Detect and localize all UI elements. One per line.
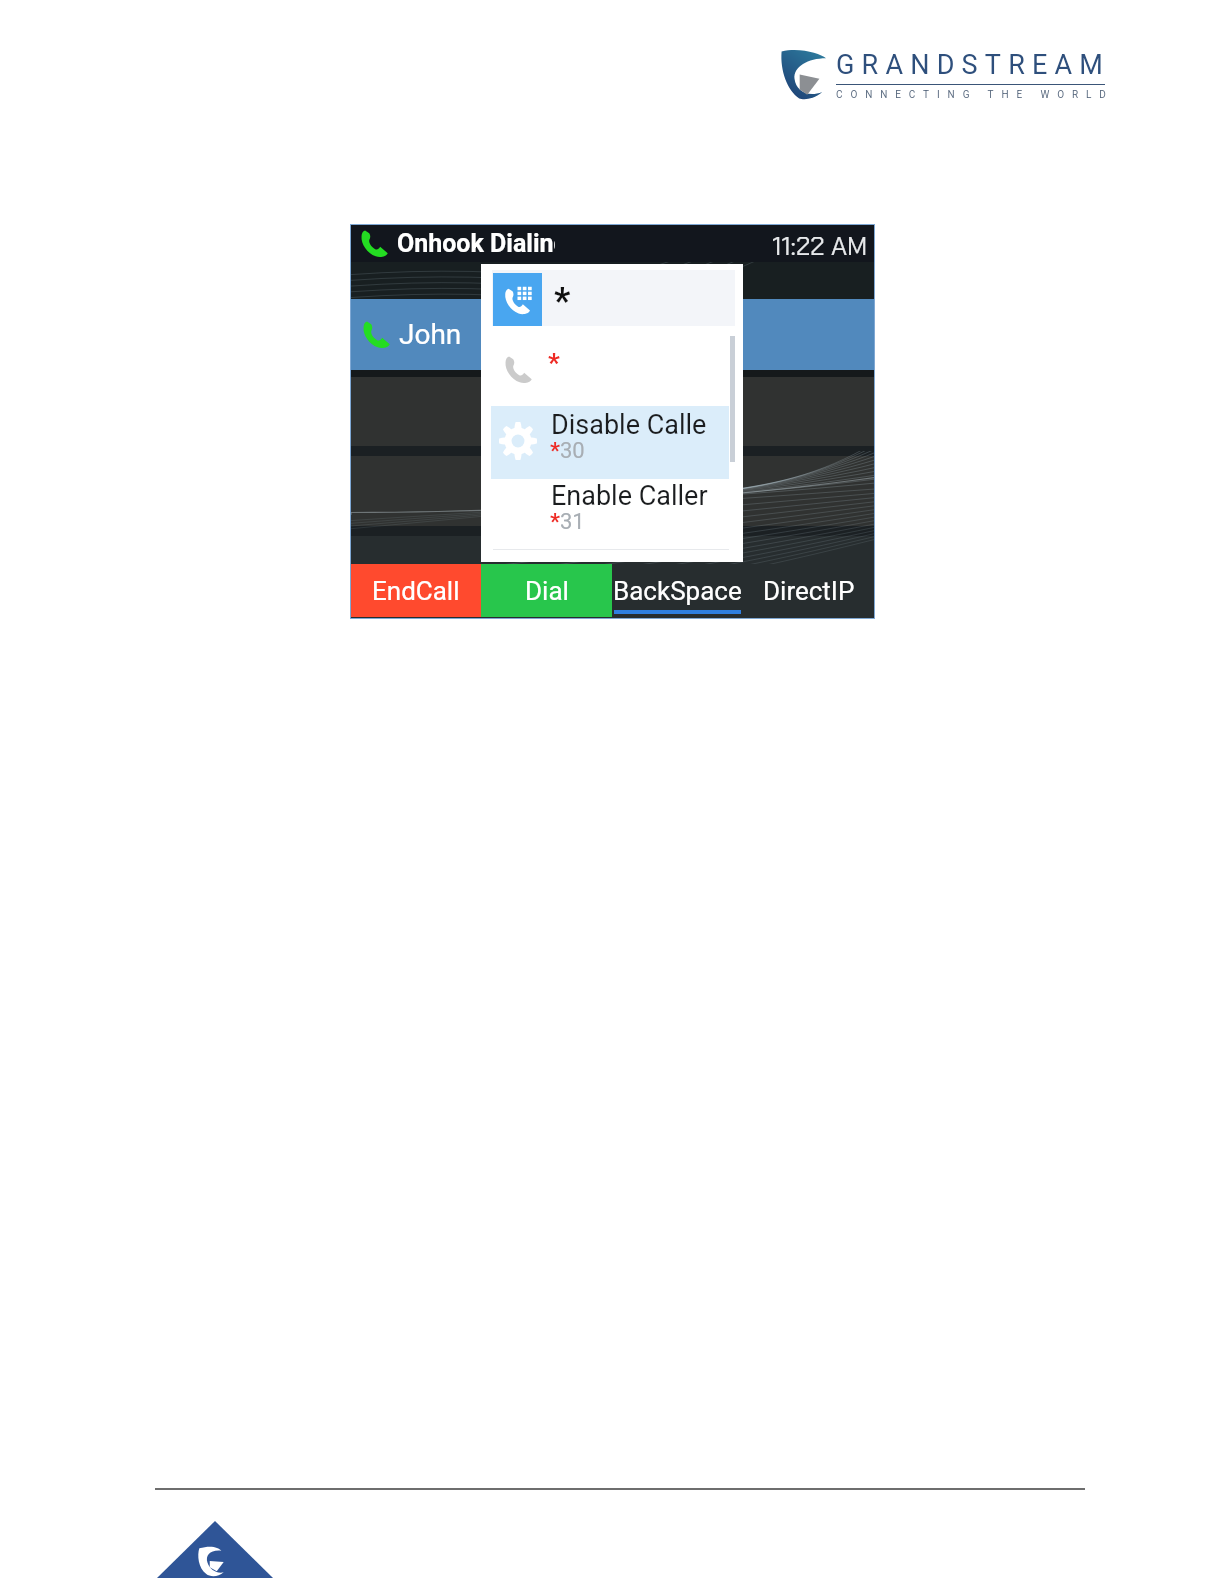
- button[interactable]: DirectIP: [743, 564, 874, 617]
- button[interactable]: John: [351, 299, 874, 370]
- staticText: BackSpace: [613, 576, 742, 606]
- button[interactable]: BackSpace: [612, 564, 743, 617]
- staticText: John: [399, 318, 462, 351]
- staticText: DirectIP: [763, 576, 855, 606]
- staticText: *: [554, 280, 571, 322]
- button[interactable]: Disable Caller ID *30: [491, 406, 729, 479]
- button[interactable]: Call *: [481, 330, 743, 406]
- button[interactable]: Dial keypad: [493, 273, 542, 326]
- staticText: Onhook Dialing: [397, 229, 555, 258]
- button[interactable]: EndCall: [351, 564, 481, 617]
- button[interactable]: Dial: [481, 564, 612, 617]
- staticText: 31: [560, 509, 585, 535]
- staticText: CONNECTING THE WORLD: [836, 89, 1114, 101]
- staticText: 11:22 AM: [772, 229, 868, 263]
- staticText: Enable Caller: [551, 480, 708, 512]
- staticText: EndCall: [372, 576, 460, 606]
- staticText: *: [550, 438, 560, 464]
- button[interactable]: Enable Caller ID *31: [491, 479, 729, 549]
- staticText: *: [550, 509, 560, 535]
- staticText: Disable Caller: [551, 409, 708, 441]
- staticText: 30: [560, 438, 585, 464]
- staticText: GRANDSTREAM: [836, 49, 1111, 81]
- staticText: Dial: [525, 576, 569, 606]
- staticText: *: [548, 348, 560, 378]
